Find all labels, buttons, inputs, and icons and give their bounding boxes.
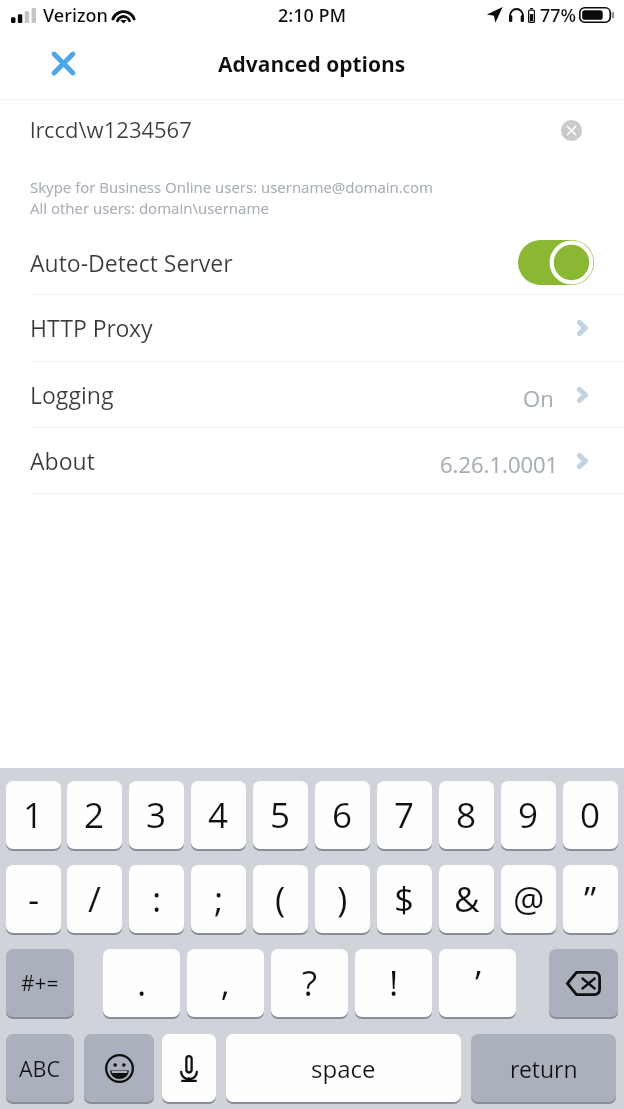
staticText: ! [389, 959, 399, 1007]
staticText: ” [584, 875, 597, 923]
button[interactable]: $ [377, 865, 432, 935]
staticText: : [152, 875, 162, 923]
staticText: 2:10 PM [278, 3, 347, 28]
staticText: - [28, 875, 40, 923]
staticText: 5 [270, 791, 291, 839]
staticText: ABC [19, 1054, 61, 1083]
staticText: 2 [84, 791, 105, 839]
button[interactable]: ! [355, 949, 432, 1019]
button[interactable]: 3 [129, 781, 184, 851]
staticText: 8 [456, 791, 477, 839]
button[interactable]: Backspace [549, 949, 618, 1019]
staticText: HTTP Proxy [30, 312, 577, 343]
button[interactable]: ABC [6, 1034, 74, 1104]
button[interactable]: 9 [501, 781, 556, 851]
button[interactable]: 8 [439, 781, 494, 851]
button[interactable]: 7 [377, 781, 432, 851]
staticText: @ [513, 875, 545, 923]
button[interactable]: - [6, 865, 61, 935]
staticText: return [510, 1053, 578, 1084]
staticText: 4 [208, 791, 229, 839]
button[interactable]: Close [39, 39, 87, 87]
staticText: lrccd\w1234567 [30, 114, 192, 144]
staticText: Verizon [43, 3, 109, 28]
button[interactable]: ” [563, 865, 618, 935]
button[interactable]: ( [253, 865, 308, 935]
button[interactable]: Emoji [84, 1034, 154, 1104]
button[interactable]: 2 [67, 781, 122, 851]
button[interactable]: return [471, 1034, 616, 1104]
button[interactable]: About [0, 427, 624, 494]
button[interactable]: Clear text [551, 110, 591, 150]
button[interactable]: ) [315, 865, 370, 935]
button[interactable]: 6 [315, 781, 370, 851]
staticText: On [523, 383, 554, 407]
staticText: / [88, 875, 101, 923]
staticText: . [137, 959, 147, 1007]
button[interactable]: @ [501, 865, 556, 935]
staticText: About [30, 445, 440, 476]
button[interactable]: , [187, 949, 264, 1019]
staticText: , [221, 959, 230, 1007]
staticText: $ [394, 875, 415, 923]
button[interactable]: 1 [6, 781, 61, 851]
button[interactable]: Auto-Detect Server [0, 231, 624, 293]
staticText: 9 [518, 791, 539, 839]
button[interactable]: . [103, 949, 180, 1019]
button[interactable]: Dictate [162, 1034, 216, 1104]
staticText: ) [337, 875, 348, 923]
staticText: All other users: domain\username [30, 198, 269, 218]
button[interactable]: ’ [439, 949, 516, 1019]
button[interactable]: & [439, 865, 494, 935]
staticText: 6.26.1.0001 [440, 449, 559, 473]
staticText: 0 [580, 791, 601, 839]
button[interactable]: : [129, 865, 184, 935]
staticText: ? [302, 959, 318, 1007]
staticText: space [311, 1052, 376, 1085]
staticText: 1 [23, 791, 44, 839]
staticText: Advanced options [218, 50, 406, 79]
staticText: Auto-Detect Server [30, 247, 548, 278]
button[interactable]: / [67, 865, 122, 935]
staticText: Logging [30, 379, 528, 410]
staticText: ’ [475, 959, 481, 1007]
button[interactable]: space [226, 1034, 461, 1104]
button[interactable]: 0 [563, 781, 618, 851]
staticText: ; [214, 875, 224, 923]
button[interactable]: 5 [253, 781, 308, 851]
staticText: ( [275, 875, 286, 923]
staticText: 7 [394, 791, 415, 839]
button[interactable]: HTTP Proxy [0, 294, 624, 361]
staticText: Skype for Business Online users: usernam… [30, 177, 433, 197]
button[interactable]: Logging [0, 361, 624, 428]
button[interactable]: ? [271, 949, 348, 1019]
button[interactable]: 4 [191, 781, 246, 851]
staticText: 3 [146, 791, 167, 839]
button[interactable]: ; [191, 865, 246, 935]
staticText: #+= [21, 969, 59, 998]
staticText: & [454, 875, 480, 923]
button[interactable]: #+= [6, 949, 74, 1019]
staticText: 77% [540, 3, 577, 28]
staticText: 6 [332, 791, 353, 839]
